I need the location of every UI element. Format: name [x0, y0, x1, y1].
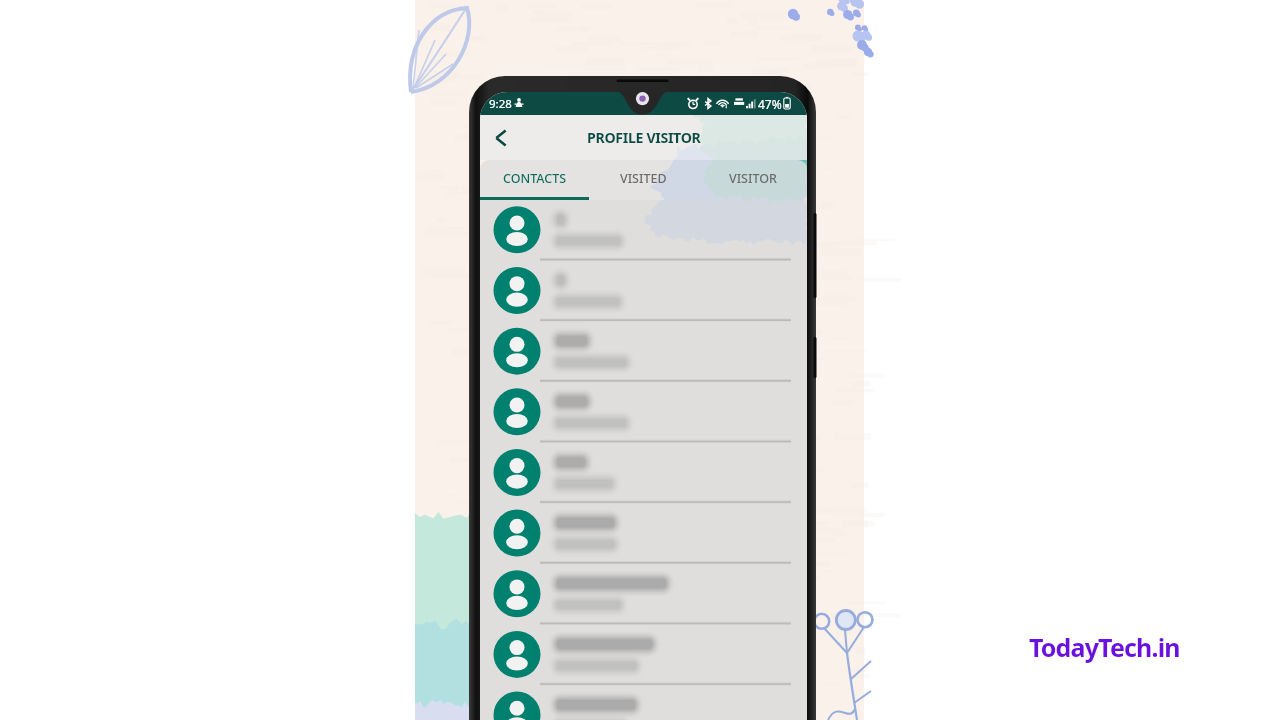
button[interactable]: Contact 3: [480, 322, 807, 383]
staticText: 47%: [758, 96, 782, 112]
staticText: TodayTech.in: [1029, 630, 1180, 664]
staticText: VISITED: [620, 170, 667, 187]
button[interactable]: Contact 2: [480, 261, 807, 322]
button[interactable]: Contact 4: [480, 383, 807, 444]
staticText: 9:28: [489, 96, 512, 112]
staticText: CONTACTS: [503, 170, 567, 187]
button[interactable]: Contact 6: [480, 505, 807, 566]
staticText: VISITOR: [729, 170, 777, 187]
button[interactable]: Contact 7: [480, 566, 807, 627]
button[interactable]: Back: [482, 119, 520, 157]
button[interactable]: Contact 9: [480, 688, 807, 720]
button[interactable]: Contact 8: [480, 627, 807, 688]
button[interactable]: Contact 5: [480, 444, 807, 505]
button[interactable]: CONTACTS: [480, 160, 589, 200]
button[interactable]: VISITOR: [698, 160, 807, 200]
button[interactable]: Contact 1: [480, 200, 807, 261]
button[interactable]: VISITED: [589, 160, 698, 200]
staticText: PROFILE VISITOR: [587, 128, 701, 147]
